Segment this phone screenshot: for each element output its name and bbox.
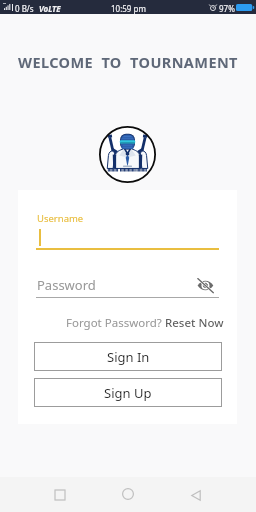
staticText: 0 B/s (15, 3, 34, 14)
button[interactable]: Recents (44, 479, 76, 511)
staticText: Username (37, 212, 84, 225)
staticText: Sign In (107, 348, 150, 366)
staticText: 97% (219, 3, 235, 14)
staticText: WELCOME TO TOURNAMENT (18, 52, 238, 72)
button[interactable]: Home (112, 478, 144, 510)
button[interactable]: Show password (197, 275, 216, 294)
button[interactable]: Reset Now (165, 315, 224, 331)
staticText: Forgot Password? (66, 315, 165, 331)
staticText: Password (37, 276, 96, 294)
staticText: 10:59 pm (111, 3, 146, 14)
button[interactable]: Sign In (34, 342, 222, 371)
staticText: Sign Up (104, 384, 152, 402)
staticText: VoLTE (39, 3, 61, 14)
button[interactable]: Back (180, 479, 212, 511)
button[interactable]: Sign Up (34, 378, 222, 407)
